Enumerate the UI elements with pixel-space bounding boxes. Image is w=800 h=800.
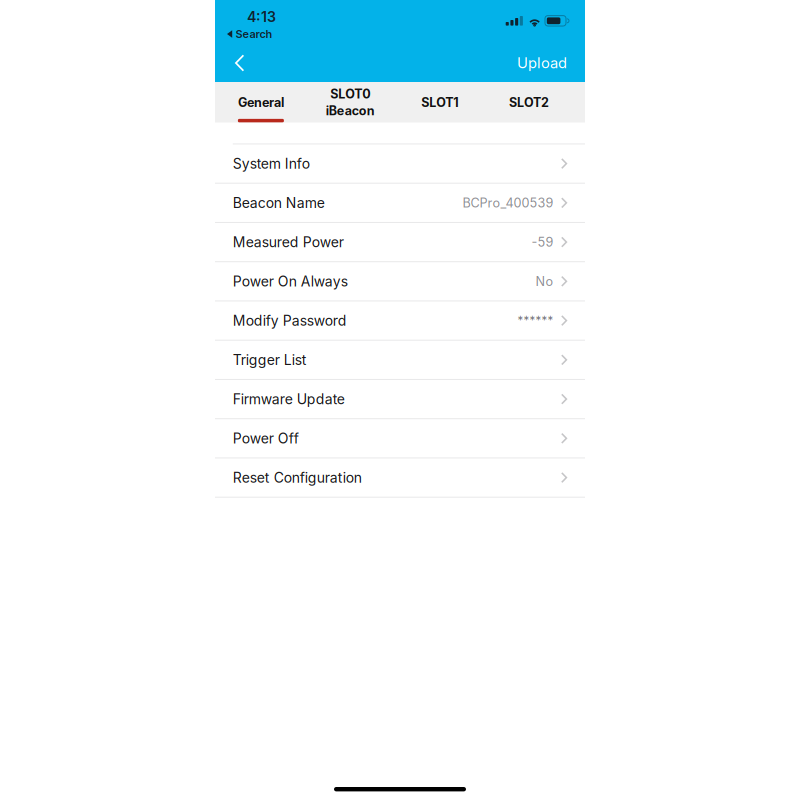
staticText: No — [535, 274, 553, 289]
staticText: BCPro_400539 — [462, 195, 553, 210]
staticText: Modify Password — [233, 312, 347, 329]
button[interactable]: Reset Configuration — [215, 458, 585, 498]
button[interactable]: SLOT2 — [484, 82, 574, 123]
button[interactable]: SLOT0 — [306, 82, 395, 123]
button[interactable]: SLOT1 — [395, 82, 484, 123]
staticText: Power On Always — [233, 273, 348, 290]
staticText: Reset Configuration — [233, 469, 362, 486]
button[interactable]: Measured Power — [215, 223, 585, 262]
button[interactable]: General — [216, 82, 306, 123]
staticText: 4:13 — [247, 8, 276, 25]
button[interactable]: System Info — [215, 144, 585, 184]
button[interactable]: Back to Search — [215, 0, 281, 45]
staticText: ****** — [517, 314, 553, 327]
staticText: System Info — [233, 155, 310, 172]
button[interactable]: Upload — [501, 44, 585, 82]
staticText: Search — [236, 27, 273, 41]
staticText: Measured Power — [233, 234, 344, 250]
button[interactable]: Trigger List — [215, 341, 585, 380]
staticText: Firmware Update — [233, 391, 345, 407]
staticText: General — [238, 95, 284, 110]
staticText: Power Off — [233, 430, 299, 447]
button[interactable]: Beacon Name — [215, 184, 585, 223]
button[interactable]: Firmware Update — [215, 380, 585, 419]
staticText: -59 — [531, 234, 553, 250]
staticText: SLOT1 — [421, 95, 458, 110]
staticText: SLOT0 — [330, 86, 370, 102]
staticText: Trigger List — [233, 351, 307, 368]
staticText: SLOT2 — [509, 95, 549, 110]
button[interactable]: Back — [215, 44, 260, 82]
staticText: Upload — [517, 54, 567, 72]
button[interactable]: Modify Password — [215, 301, 585, 341]
button[interactable]: Power On Always — [215, 262, 585, 301]
staticText: Beacon Name — [233, 194, 325, 211]
button[interactable]: Power Off — [215, 419, 585, 458]
staticText: iBeacon — [326, 103, 375, 118]
